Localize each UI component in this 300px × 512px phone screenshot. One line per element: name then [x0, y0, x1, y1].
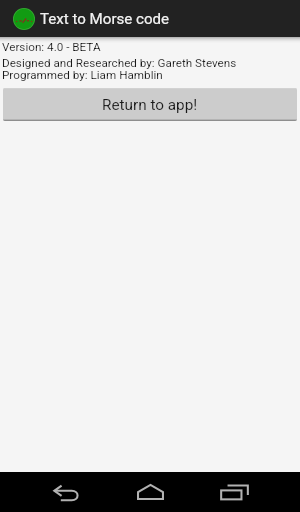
button[interactable]: Home — [108, 472, 192, 512]
staticText: Version: 4.0 - BETA — [2, 40, 101, 54]
button[interactable]: Back — [24, 472, 108, 512]
button[interactable]: Return to app! — [3, 88, 297, 121]
staticText: Return to app! — [102, 96, 198, 114]
button[interactable]: Recent apps — [192, 472, 276, 512]
staticText: Programmed by: Liam Hamblin — [2, 68, 163, 80]
staticText: Designed and Researched by: Gareth Steve… — [2, 56, 237, 68]
staticText: Text to Morse code — [40, 10, 170, 28]
